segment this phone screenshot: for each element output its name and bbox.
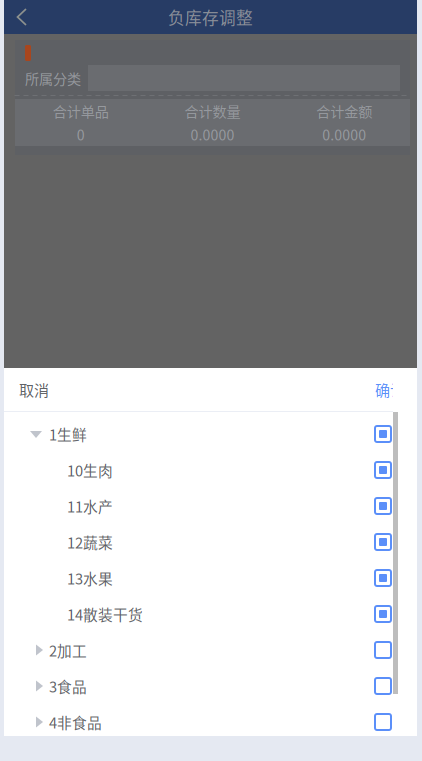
staticText: 2加工 bbox=[49, 639, 87, 661]
staticText: 合计金额 bbox=[316, 100, 372, 121]
button[interactable]: 4非食品 bbox=[4, 704, 417, 740]
staticText: 负库存调整 bbox=[168, 5, 253, 29]
button[interactable]: 3食品 bbox=[4, 668, 417, 704]
staticText: 合计数量 bbox=[184, 100, 240, 121]
staticText: 0.0000 bbox=[322, 124, 366, 144]
staticText: 13水果 bbox=[67, 567, 113, 589]
button[interactable]: 10生肉 bbox=[4, 452, 417, 488]
button[interactable]: 1生鲜 bbox=[4, 416, 417, 452]
staticText: 12蔬菜 bbox=[67, 531, 113, 553]
staticText: 10生肉 bbox=[67, 459, 113, 481]
button[interactable]: 确认 bbox=[335, 368, 417, 411]
staticText: 3食品 bbox=[49, 675, 87, 697]
staticText: 14散装干货 bbox=[67, 603, 143, 625]
staticText: 确认 bbox=[375, 379, 405, 400]
staticText: 1生鲜 bbox=[49, 423, 87, 445]
button[interactable]: 13水果 bbox=[4, 560, 417, 596]
button[interactable]: 2加工 bbox=[4, 632, 417, 668]
staticText: 4非食品 bbox=[49, 711, 102, 733]
button[interactable]: 取消 bbox=[4, 368, 99, 411]
staticText: 0 bbox=[77, 124, 85, 144]
staticText: 取消 bbox=[19, 379, 49, 400]
button[interactable]: 12蔬菜 bbox=[4, 524, 417, 560]
staticText: 所属分类 bbox=[25, 68, 81, 88]
button[interactable]: Back bbox=[4, 0, 40, 34]
staticText: 合计单品 bbox=[53, 100, 109, 121]
button[interactable]: 11水产 bbox=[4, 488, 417, 524]
staticText: 0.0000 bbox=[190, 124, 234, 144]
staticText: 11水产 bbox=[67, 495, 113, 517]
button[interactable]: 14散装干货 bbox=[4, 596, 417, 632]
